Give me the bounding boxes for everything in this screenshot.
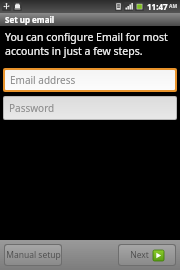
staticText: Manual setup xyxy=(6,249,61,261)
staticText: You can configure Email for most account… xyxy=(5,30,172,58)
staticText: Email address xyxy=(10,73,76,87)
staticText: Next xyxy=(130,249,149,261)
button[interactable]: Manual setup xyxy=(5,245,61,265)
staticText: Password xyxy=(9,101,55,115)
button[interactable]: Password xyxy=(4,97,176,119)
button[interactable]: Next xyxy=(119,245,175,265)
button[interactable]: Email address xyxy=(5,70,175,90)
other: Next xyxy=(153,250,164,261)
staticText: Set up email xyxy=(5,14,55,25)
staticText: AM xyxy=(169,3,178,10)
staticText: 11:47 xyxy=(147,1,168,12)
